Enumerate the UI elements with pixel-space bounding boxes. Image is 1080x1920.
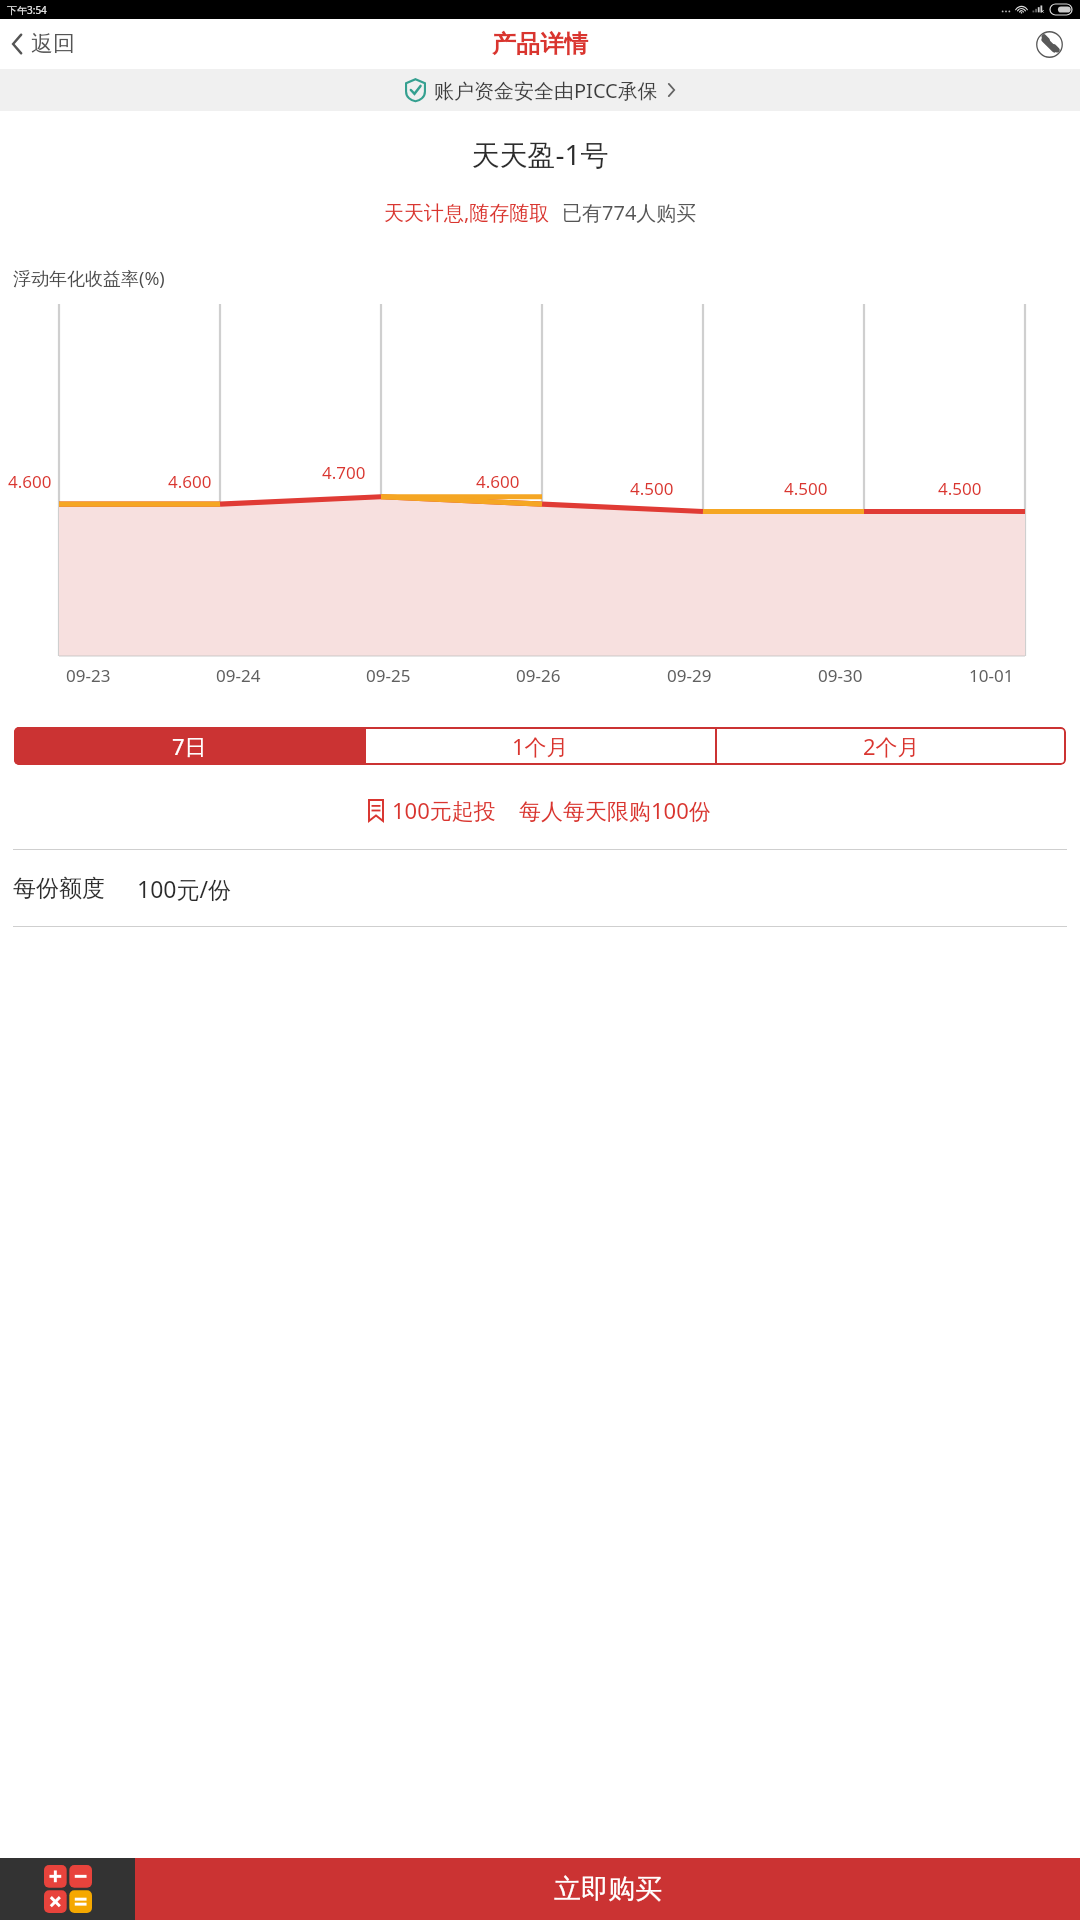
staticText: 100元/份	[137, 873, 232, 904]
button[interactable]: 立即购买	[135, 1858, 1080, 1920]
staticText: 4.500	[630, 477, 674, 500]
button[interactable]: Calculator	[0, 1858, 135, 1920]
staticText: 1个月	[512, 731, 569, 761]
staticText: 4.600	[168, 470, 212, 493]
staticText: 返回	[31, 30, 75, 58]
staticText: 4.700	[322, 461, 366, 484]
staticText: 100元起投	[392, 795, 496, 825]
staticText: 2个月	[863, 731, 920, 761]
button[interactable]: 账户资金安全由PICC承保	[0, 69, 1080, 111]
staticText: 4.500	[784, 477, 828, 500]
staticText: 浮动年化收益率(%)	[13, 266, 165, 291]
staticText: 每人每天限购100份	[519, 795, 711, 825]
staticText: 天天盈-1号	[0, 135, 1080, 173]
staticText: 已有774人购买	[562, 199, 697, 226]
button[interactable]: 1个月	[366, 727, 715, 765]
staticText: 账户资金安全由PICC承保	[434, 77, 658, 104]
staticText: 09-30	[818, 664, 863, 687]
staticText: 09-26	[516, 664, 561, 687]
button[interactable]: 每份额度	[13, 850, 1080, 926]
staticText: 09-23	[66, 664, 111, 687]
staticText: 4.600	[8, 470, 52, 493]
button[interactable]: 返回	[0, 24, 85, 64]
button[interactable]: Call customer service	[1019, 30, 1080, 59]
staticText: 09-29	[667, 664, 712, 687]
staticText: 10-01	[969, 664, 1014, 687]
staticText: 7日	[172, 731, 207, 761]
staticText: 天天计息,随存随取	[384, 199, 550, 226]
staticText: 下午3:54	[7, 3, 47, 17]
staticText: 4.600	[476, 470, 520, 493]
staticText: 09-25	[366, 664, 411, 687]
staticText: 09-24	[216, 664, 261, 687]
staticText: 立即购买	[554, 1872, 662, 1906]
staticText: 每份额度	[13, 874, 105, 903]
button[interactable]: 7日	[14, 727, 364, 765]
staticText: 4.500	[938, 477, 982, 500]
staticText: 产品详情	[492, 29, 588, 59]
button[interactable]: 2个月	[717, 727, 1066, 765]
